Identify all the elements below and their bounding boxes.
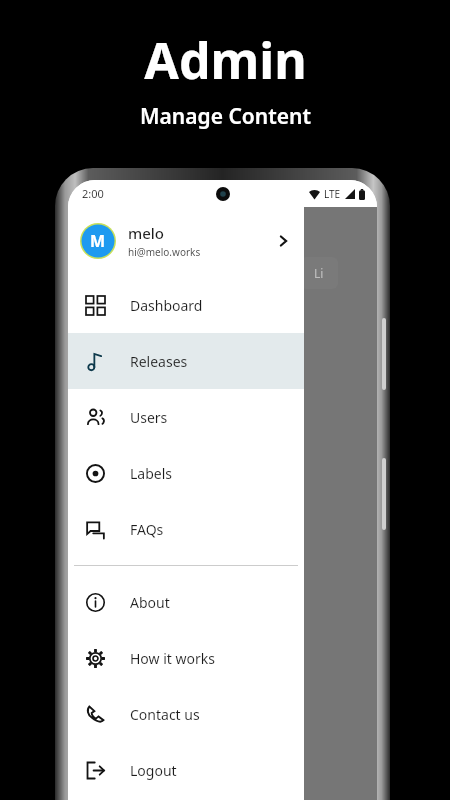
button[interactable]: How it works [68, 630, 304, 686]
staticText: M [90, 230, 106, 252]
button[interactable]: FAQs [68, 501, 304, 557]
button[interactable]: Li [300, 257, 338, 289]
button[interactable]: About [68, 574, 304, 630]
staticText: Manage Content [140, 102, 311, 131]
button[interactable]: M [68, 215, 304, 267]
staticText: Labels [130, 464, 173, 483]
staticText: Releases [130, 352, 188, 371]
staticText: 2:00 [82, 186, 104, 201]
staticText: LTE [324, 187, 341, 201]
staticText: melo [128, 223, 165, 243]
staticText: Users [130, 408, 168, 427]
button[interactable]: Users [68, 389, 304, 445]
button[interactable]: Contact us [68, 686, 304, 742]
button[interactable]: Logout [68, 742, 304, 798]
staticText: Li [314, 265, 324, 281]
staticText: Admin [144, 26, 307, 94]
staticText: Logout [130, 761, 177, 780]
staticText: About [130, 593, 170, 612]
staticText: FAQs [130, 520, 164, 539]
staticText: hi@melo.works [128, 245, 201, 259]
button[interactable]: Dashboard [68, 277, 304, 333]
staticText: Dashboard [130, 296, 203, 315]
staticText: How it works [130, 649, 215, 668]
button[interactable]: Labels [68, 445, 304, 501]
button[interactable]: Releases [68, 333, 304, 389]
staticText: Contact us [130, 705, 200, 724]
